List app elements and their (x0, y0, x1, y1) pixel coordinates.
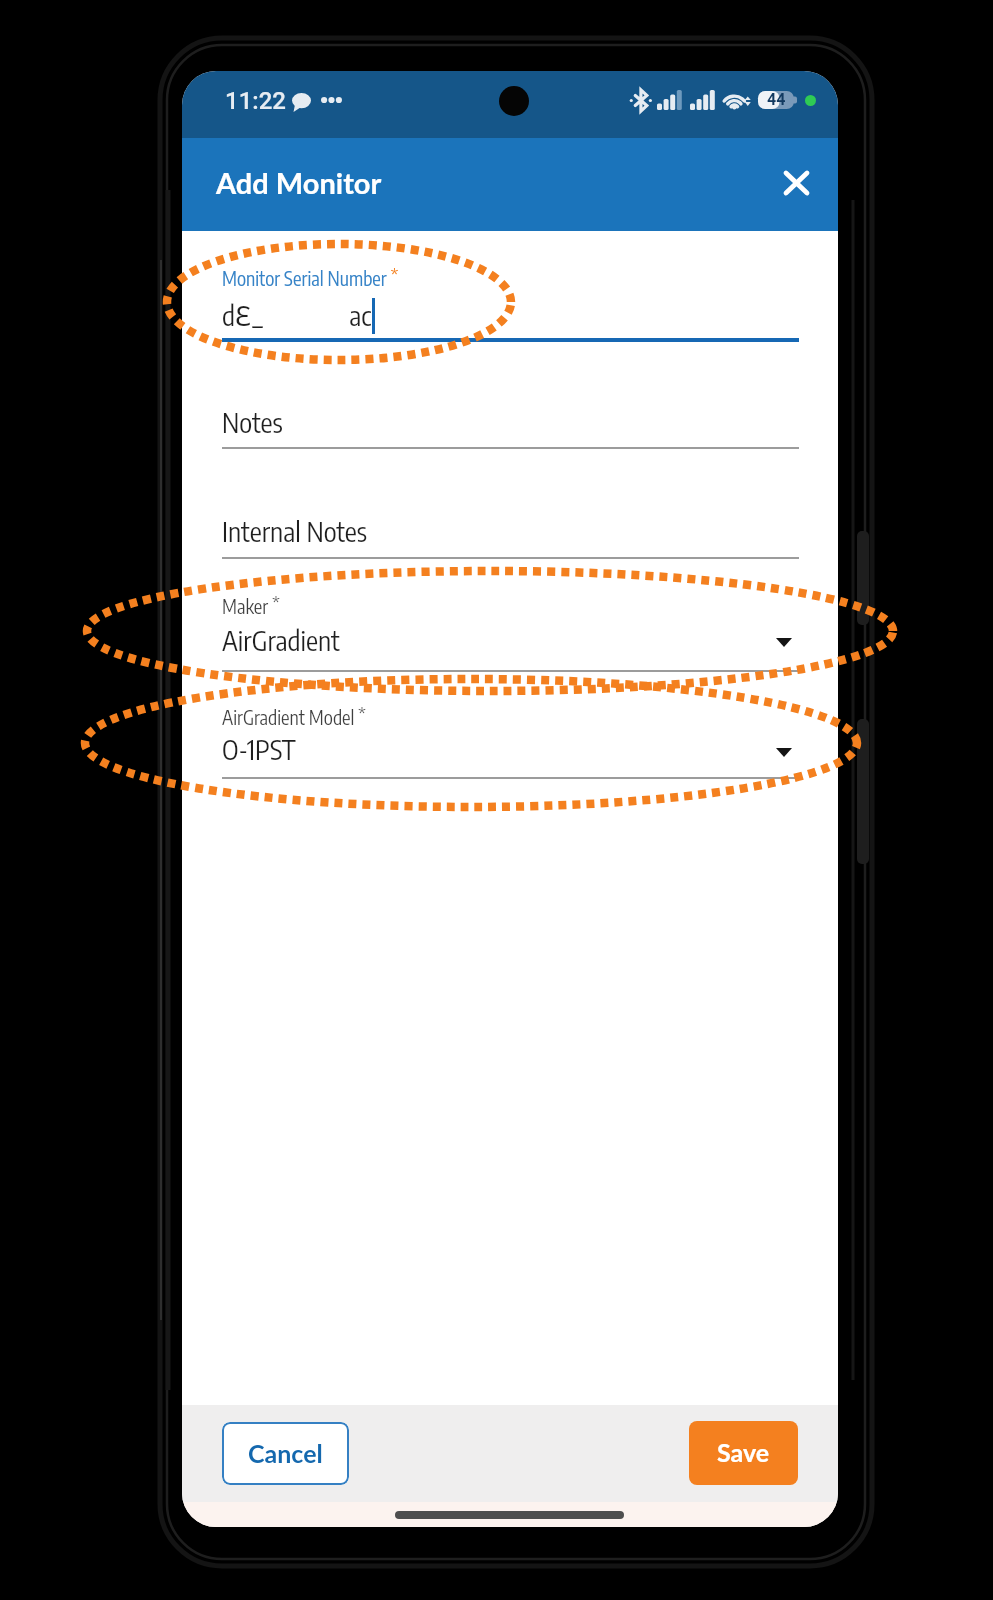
button[interactable]: Cancel (222, 1422, 349, 1485)
staticText: Internal Notes (222, 514, 368, 548)
staticText: Add Monitor (216, 165, 382, 200)
staticText: AirGradient Model * (222, 702, 366, 729)
staticText: Notes (222, 405, 283, 439)
staticText: AirGradient (222, 623, 340, 657)
staticText: Save (717, 1437, 770, 1467)
button[interactable]: Close (768, 155, 824, 211)
staticText: 44 (767, 90, 786, 108)
staticText: dƐ_ ac (222, 297, 372, 334)
staticText: O-1PST (222, 732, 296, 766)
staticText: 11:22 (225, 87, 286, 115)
staticText: Monitor Serial Number * (222, 263, 399, 290)
button[interactable] (222, 696, 799, 785)
button[interactable] (222, 400, 799, 455)
button[interactable] (222, 250, 799, 345)
staticText: Maker * (222, 591, 280, 618)
button[interactable]: Save (689, 1421, 798, 1485)
staticText: Cancel (248, 1438, 323, 1468)
button[interactable] (222, 510, 799, 565)
button[interactable] (222, 588, 799, 678)
